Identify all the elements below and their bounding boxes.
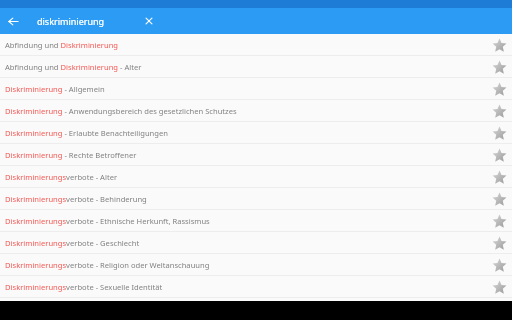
button[interactable]: Diskriminierung - Erlaubte Benachteiligu…: [0, 122, 512, 144]
staticText: Diskriminierung - Rechte Betroffener: [5, 150, 488, 160]
button[interactable]: Back: [0, 8, 26, 34]
staticText: Diskriminierungsverbote - Alter: [5, 172, 488, 182]
button[interactable]: Add to favorites: [488, 56, 510, 78]
button[interactable]: Add to favorites: [488, 144, 510, 166]
button[interactable]: Diskriminierungsverbote - Alter: [0, 166, 512, 188]
staticText: Diskriminierungsverbote - Geschlecht: [5, 238, 488, 248]
staticText: diskriminierung: [37, 15, 105, 27]
button[interactable]: Diskriminierung - Anwendungsbereich des …: [0, 100, 512, 122]
button[interactable]: Add to favorites: [488, 122, 510, 144]
button[interactable]: Diskriminierung - Allgemein: [0, 78, 512, 100]
staticText: Diskriminierungsverbote - Ethnische Herk…: [5, 216, 488, 226]
button[interactable]: Clear search: [138, 10, 160, 32]
staticText: Diskriminierungsverbote - Sexuelle Ident…: [5, 282, 488, 292]
staticText: Diskriminierung - Erlaubte Benachteiligu…: [5, 128, 488, 138]
button[interactable]: Add to favorites: [488, 78, 510, 100]
staticText: Diskriminierungsverbote - Religion oder …: [5, 260, 488, 270]
button[interactable]: Diskriminierungsverbote - Ethnische Herk…: [0, 210, 512, 232]
staticText: Abfindung und Diskriminierung - Alter: [5, 62, 488, 72]
staticText: Diskriminierungsverbote - Behinderung: [5, 194, 488, 204]
button[interactable]: Abfindung und Diskriminierung: [0, 34, 512, 56]
button[interactable]: Add to favorites: [488, 34, 510, 56]
button[interactable]: Diskriminierungsverbote - Religion oder …: [0, 254, 512, 276]
button[interactable]: Add to favorites: [488, 276, 510, 298]
staticText: Diskriminierung - Anwendungsbereich des …: [5, 106, 488, 116]
button[interactable]: Add to favorites: [488, 166, 510, 188]
button[interactable]: Diskriminierungsverbote - Geschlecht: [0, 232, 512, 254]
button[interactable]: Add to favorites: [488, 232, 510, 254]
button[interactable]: Diskriminierungsverbote - Behinderung: [0, 188, 512, 210]
button[interactable]: Abfindung und Diskriminierung - Alter: [0, 56, 512, 78]
button[interactable]: Diskriminierungsverbote - Sexuelle Ident…: [0, 276, 512, 298]
button[interactable]: Diskriminierung - Rechte Betroffener: [0, 144, 512, 166]
button[interactable]: Add to favorites: [488, 188, 510, 210]
button[interactable]: Add to favorites: [488, 254, 510, 276]
button[interactable]: Add to favorites: [488, 210, 510, 232]
button[interactable]: Add to favorites: [488, 100, 510, 122]
staticText: Diskriminierung - Allgemein: [5, 84, 488, 94]
staticText: Abfindung und Diskriminierung: [5, 40, 488, 50]
